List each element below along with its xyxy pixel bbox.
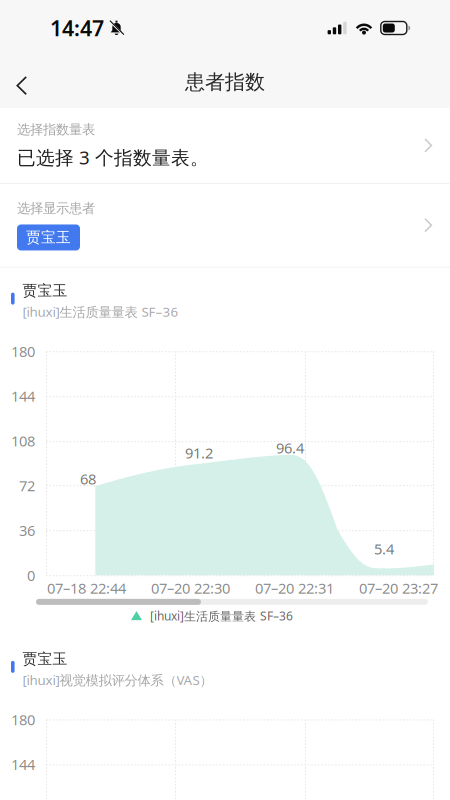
staticText: [ihuxi]生活质量量表 SF–36 (23, 303, 179, 320)
button[interactable]: 选择显示患者 (0, 184, 450, 267)
staticText: 07–20 23:27 (359, 578, 438, 598)
staticText: 选择指数量表 (17, 121, 95, 138)
staticText: 患者指数 (185, 70, 265, 94)
staticText: 5.4 (374, 539, 394, 559)
staticText: 0 (27, 565, 35, 585)
button[interactable]: Back (1, 60, 43, 104)
staticText: 68 (80, 469, 96, 489)
staticText: 贾宝玉 (23, 650, 68, 668)
staticText: 72 (19, 476, 35, 495)
staticText: 144 (11, 754, 35, 774)
button[interactable]: 选择指数量表 (0, 108, 450, 183)
staticText: 108 (11, 431, 35, 451)
staticText: 选择显示患者 (17, 200, 95, 216)
staticText: 144 (11, 386, 35, 406)
staticText: 07–20 22:31 (255, 578, 334, 598)
staticText: 07–18 22:44 (47, 578, 126, 598)
staticText: 贾宝玉 (26, 228, 71, 246)
staticText: 96.4 (276, 438, 304, 458)
staticText: 180 (11, 710, 35, 729)
staticText: 已选择 3 个指数量表。 (17, 145, 209, 170)
staticText: 14:47 (50, 14, 104, 42)
staticText: 07–20 22:30 (151, 578, 230, 598)
staticText: 180 (11, 341, 35, 361)
staticText: [ihuxi]生活质量量表 SF–36 (150, 608, 293, 624)
staticText: 36 (19, 521, 35, 540)
staticText: 91.2 (185, 443, 213, 463)
staticText: 贾宝玉 (23, 282, 68, 300)
staticText: [ihuxi]视觉模拟评分体系（VAS） (23, 671, 213, 689)
